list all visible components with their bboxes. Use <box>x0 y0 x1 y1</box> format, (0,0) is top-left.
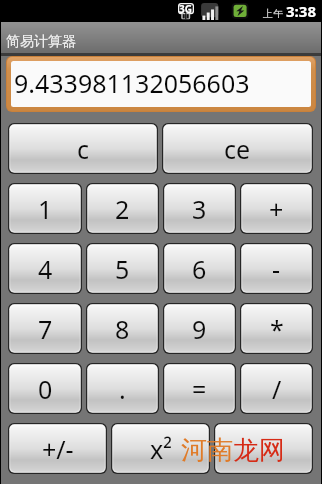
button[interactable]: +/- <box>8 423 107 474</box>
staticText: c <box>77 132 90 166</box>
button[interactable]: 4 <box>8 243 82 294</box>
button[interactable]: c <box>8 123 158 174</box>
staticText: . <box>119 372 126 406</box>
staticText: ce <box>224 132 251 166</box>
button[interactable]: 3 <box>163 183 236 234</box>
button[interactable]: + <box>240 183 313 234</box>
staticText: 8 <box>115 312 130 346</box>
staticText: 7 <box>38 312 53 346</box>
staticText: 3:38 <box>286 1 316 21</box>
staticText: 4 <box>38 252 53 286</box>
staticText: 2 <box>115 192 130 226</box>
button[interactable]: = <box>163 363 236 414</box>
button[interactable]: * <box>240 303 313 354</box>
staticText: +/- <box>42 432 74 466</box>
button[interactable]: 6 <box>163 243 236 294</box>
button[interactable]: - <box>240 243 313 294</box>
button[interactable] <box>214 423 313 474</box>
staticText: 上午 <box>263 7 283 20</box>
staticText: 9 <box>192 312 207 346</box>
staticText: 3 <box>192 192 207 226</box>
staticText: 9.433981132056603 <box>14 66 250 100</box>
button[interactable]: x² <box>111 423 210 474</box>
button[interactable]: 9 <box>163 303 236 354</box>
button[interactable]: 5 <box>86 243 159 294</box>
button[interactable]: 7 <box>8 303 82 354</box>
button[interactable]: ce <box>162 123 313 174</box>
staticText: = <box>192 372 207 406</box>
staticText: 5 <box>115 252 130 286</box>
button[interactable]: 8 <box>86 303 159 354</box>
staticText: 简易计算器 <box>6 33 76 51</box>
button[interactable]: / <box>240 363 313 414</box>
staticText: 龙网 <box>233 434 285 467</box>
staticText: 河南 <box>181 434 233 467</box>
staticText: x² <box>150 432 172 466</box>
staticText: 0 <box>38 372 53 406</box>
staticText: 1 <box>38 192 53 226</box>
button[interactable]: 1 <box>8 183 82 234</box>
staticText: / <box>272 372 282 406</box>
staticText: - <box>272 252 281 286</box>
staticText: + <box>269 192 284 226</box>
button[interactable]: 2 <box>86 183 159 234</box>
staticText: * <box>270 312 284 346</box>
button[interactable]: 0 <box>8 363 82 414</box>
staticText: 3G <box>179 2 192 16</box>
staticText: 6 <box>192 252 207 286</box>
button[interactable]: . <box>86 363 159 414</box>
